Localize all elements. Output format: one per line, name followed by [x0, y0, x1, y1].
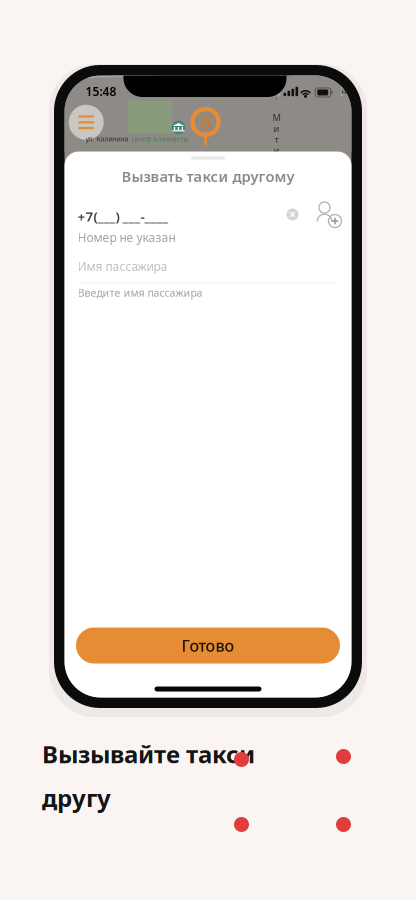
staticText: и [273, 122, 279, 135]
button[interactable]: Готово [76, 627, 340, 663]
staticText: ул. Калинина [85, 134, 128, 143]
staticText: 15:48 [85, 83, 116, 99]
staticText: другу [42, 782, 111, 814]
staticText: т [274, 133, 278, 145]
staticText: В [200, 110, 211, 133]
staticText [275, 57, 277, 69]
staticText: у [274, 68, 279, 80]
button[interactable]: Clear phone number [281, 203, 303, 225]
staticText: Вызывайте такси [42, 738, 255, 770]
staticText: й [341, 74, 347, 86]
staticText: и [273, 144, 279, 156]
staticText: Введите имя пассажира [77, 285, 202, 300]
staticText: . [275, 89, 278, 102]
staticText: Вызвать такси другому [121, 166, 294, 186]
staticText: к [274, 177, 279, 189]
staticText: М [272, 111, 280, 124]
staticText: Номер не указан [77, 229, 175, 245]
staticText: н [341, 85, 347, 97]
staticText: Имя пассажира [77, 258, 167, 274]
staticText: +7(___) ___-____ [77, 207, 168, 225]
staticText: Готово [181, 635, 234, 656]
button[interactable]: Choose from contacts [315, 201, 340, 227]
staticText: с [274, 166, 279, 178]
staticText: а [341, 63, 346, 75]
staticText: Центр Елизаветы [131, 134, 188, 143]
